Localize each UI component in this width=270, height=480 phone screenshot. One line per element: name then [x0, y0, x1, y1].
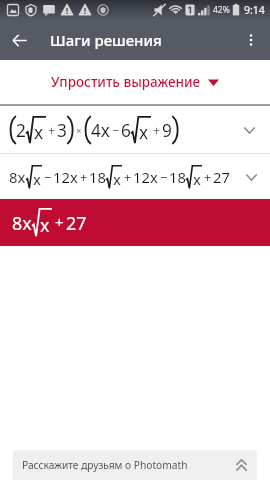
- staticText: 2: [16, 119, 26, 142]
- staticText: 6: [121, 119, 131, 142]
- staticText: 27: [66, 211, 87, 235]
- staticText: −: [44, 169, 52, 186]
- staticText: 4x: [91, 119, 110, 142]
- staticText: Шаги решения: [50, 30, 162, 50]
- staticText: 8x: [12, 211, 32, 235]
- staticText: ×: [76, 124, 82, 137]
- staticText: −: [112, 122, 120, 139]
- staticText: 3: [57, 119, 67, 142]
- staticText: +: [124, 169, 132, 186]
- staticText: Расскажите друзьям о Photomath: [22, 458, 188, 472]
- staticText: +: [55, 212, 64, 233]
- staticText: x: [139, 121, 149, 144]
- staticText: +: [153, 122, 161, 139]
- staticText: −: [160, 169, 168, 186]
- button[interactable]: Расскажите друзьям о Photomath: [13, 450, 257, 480]
- button[interactable]: 2: [0, 106, 270, 153]
- staticText: +: [80, 169, 88, 186]
- staticText: 12x: [133, 167, 158, 187]
- button[interactable]: 8x: [0, 199, 270, 246]
- staticText: x: [40, 213, 50, 237]
- staticText: 12x: [53, 167, 78, 187]
- staticText: 9: [162, 119, 172, 142]
- staticText: +: [204, 169, 212, 186]
- staticText: 18: [89, 167, 106, 187]
- button[interactable]: More options: [232, 21, 270, 59]
- staticText: 42%: [213, 4, 230, 16]
- staticText: 18: [169, 167, 186, 187]
- button[interactable]: Упростить выражение: [0, 60, 270, 104]
- staticText: +: [48, 122, 56, 139]
- staticText: 9:14: [244, 3, 265, 17]
- staticText: x: [34, 121, 44, 144]
- button[interactable]: Back: [0, 21, 38, 59]
- staticText: 27: [213, 167, 230, 187]
- button[interactable]: 8x: [0, 154, 270, 199]
- other: Expand: [231, 455, 251, 475]
- staticText: 8x: [9, 167, 26, 187]
- staticText: Упростить выражение: [51, 73, 201, 91]
- staticText: x: [193, 169, 201, 189]
- staticText: x: [113, 169, 121, 189]
- staticText: x: [33, 169, 41, 189]
